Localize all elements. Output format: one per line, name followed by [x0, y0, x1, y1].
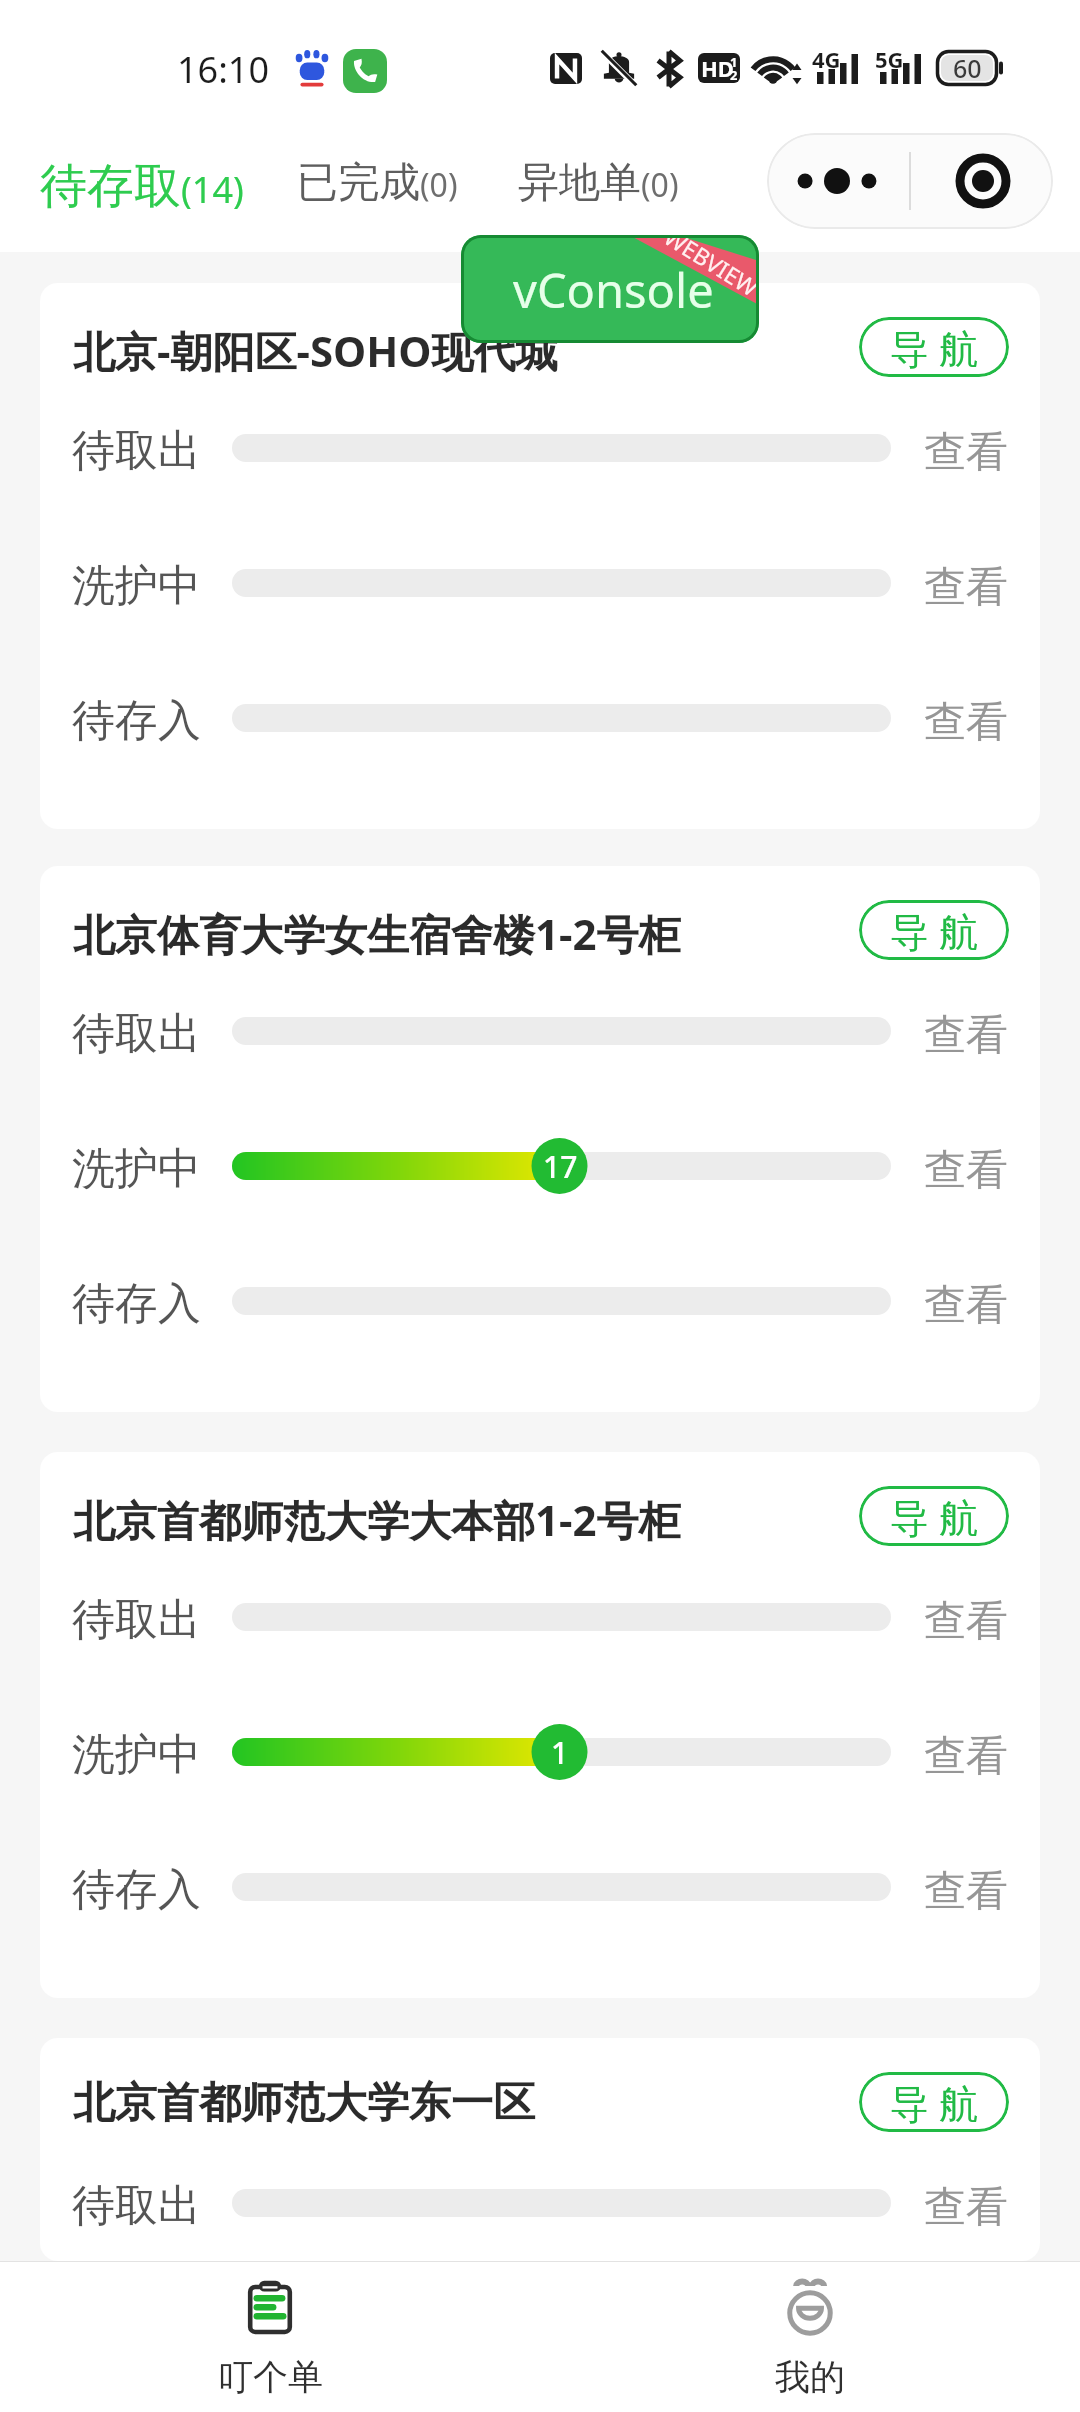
staticText: 北京体育大学女生宿舍楼1-2号柜: [73, 905, 873, 962]
staticText: 导 航: [890, 321, 979, 374]
staticText: 已完成: [297, 157, 420, 209]
staticText: (0): [641, 163, 679, 207]
button[interactable]: 查看: [924, 561, 1008, 614]
staticText: 1: [551, 1732, 569, 1773]
staticText: 2: [730, 66, 738, 83]
staticText: 北京首都师范大学东一区: [73, 2077, 873, 2130]
button[interactable]: 查看: [924, 2181, 1008, 2234]
button[interactable]: 待存取: [40, 157, 244, 216]
staticText: 导 航: [890, 1490, 979, 1543]
button[interactable]: More: [767, 133, 910, 229]
staticText: 待取出: [72, 1593, 201, 1647]
staticText: HD: [701, 53, 734, 83]
staticText: 17: [543, 1146, 578, 1187]
staticText: WEBVIEW: [659, 235, 759, 302]
staticText: 洗护中: [72, 1142, 201, 1196]
staticText: 1: [730, 53, 738, 71]
staticText: 查看: [924, 426, 1008, 479]
staticText: 16:10: [177, 45, 270, 94]
staticText: 导 航: [890, 904, 979, 957]
staticText: 待存入: [72, 1863, 201, 1917]
staticText: 待取出: [72, 2179, 201, 2233]
staticText: 查看: [924, 1865, 1008, 1918]
staticText: 导 航: [890, 2076, 979, 2129]
button[interactable]: 查看: [924, 1279, 1008, 1332]
staticText: 查看: [924, 561, 1008, 614]
staticText: 待存入: [72, 1277, 201, 1331]
staticText: 查看: [924, 2181, 1008, 2234]
staticText: 我的: [775, 2355, 845, 2399]
button[interactable]: 查看: [924, 426, 1008, 479]
staticText: (0): [420, 163, 458, 207]
button[interactable]: 异地单: [518, 157, 679, 209]
button[interactable]: 查看: [924, 1144, 1008, 1197]
staticText: vConsole: [513, 258, 714, 322]
button[interactable]: 北京首都师范大学东一区: [40, 2038, 1040, 2261]
button[interactable]: 导 航: [859, 900, 1009, 960]
button[interactable]: 查看: [924, 1865, 1008, 1918]
staticText: 查看: [924, 1730, 1008, 1783]
button[interactable]: 北京体育大学女生宿舍楼1-2号柜: [40, 866, 1040, 1412]
button[interactable]: 查看: [924, 1009, 1008, 1062]
staticText: 查看: [924, 1144, 1008, 1197]
button[interactable]: 导 航: [859, 317, 1009, 377]
button[interactable]: 查看: [924, 1595, 1008, 1648]
staticText: 查看: [924, 1009, 1008, 1062]
staticText: 待存取: [40, 157, 181, 216]
button[interactable]: 查看: [924, 696, 1008, 749]
staticText: 查看: [924, 1595, 1008, 1648]
button[interactable]: 导 航: [859, 1486, 1009, 1546]
staticText: 待取出: [72, 1007, 201, 1061]
button[interactable]: 我的: [540, 2262, 1080, 2412]
button[interactable]: Close mini program: [910, 133, 1053, 229]
staticText: 4G: [812, 44, 841, 74]
staticText: 待取出: [72, 424, 201, 478]
staticText: 待存入: [72, 694, 201, 748]
staticText: 异地单: [518, 157, 641, 209]
button[interactable]: 北京首都师范大学大本部1-2号柜: [40, 1452, 1040, 1998]
staticText: 北京首都师范大学大本部1-2号柜: [73, 1491, 873, 1548]
staticText: 北京-朝阳区-SOHO现代城: [73, 322, 873, 379]
staticText: 5G: [875, 44, 904, 74]
staticText: 60: [953, 51, 982, 85]
button[interactable]: 查看: [924, 1730, 1008, 1783]
staticText: 洗护中: [72, 559, 201, 613]
staticText: 查看: [924, 1279, 1008, 1332]
staticText: 洗护中: [72, 1728, 201, 1782]
button[interactable]: 导 航: [859, 2072, 1009, 2132]
button[interactable]: 北京-朝阳区-SOHO现代城: [40, 283, 1040, 829]
button[interactable]: 已完成: [297, 157, 458, 209]
staticText: 查看: [924, 696, 1008, 749]
button[interactable]: WEBVIEW: [461, 235, 759, 343]
button[interactable]: 叮个单: [0, 2262, 540, 2412]
staticText: (14): [181, 165, 244, 214]
staticText: 叮个单: [218, 2355, 323, 2399]
